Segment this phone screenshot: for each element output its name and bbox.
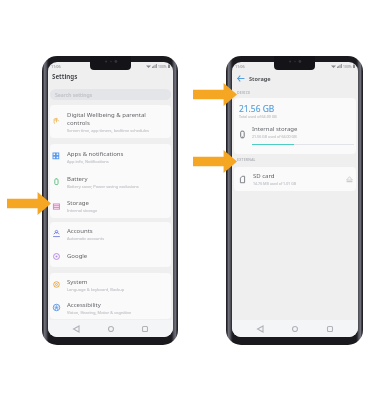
staticText: Search settings bbox=[55, 91, 93, 98]
button[interactable]: Apps & notifications bbox=[50, 144, 171, 169]
button[interactable]: SD card bbox=[234, 167, 356, 191]
staticText: Battery bbox=[67, 175, 88, 183]
button[interactable]: Battery bbox=[50, 169, 171, 194]
staticText: 11:06 bbox=[235, 64, 245, 69]
other: Storage step bbox=[7, 192, 51, 215]
staticText: Digital Wellbeing & parental bbox=[67, 111, 146, 119]
staticText: System bbox=[67, 278, 88, 286]
button[interactable]: Accessibility bbox=[50, 296, 171, 319]
button[interactable]: Back bbox=[235, 73, 246, 84]
staticText: Settings bbox=[52, 72, 78, 80]
staticText: controls bbox=[67, 119, 90, 127]
staticText: 14.76 MB used of 1.01 GB bbox=[253, 181, 297, 186]
staticText: SD card bbox=[253, 172, 275, 180]
staticText: Storage bbox=[67, 199, 89, 207]
button[interactable]: Recents bbox=[323, 322, 337, 336]
staticText: 21.56 GB bbox=[239, 103, 275, 114]
staticText: Accounts bbox=[67, 227, 93, 235]
staticText: App info, Notifications bbox=[67, 159, 109, 164]
button[interactable]: System bbox=[50, 273, 171, 296]
staticText: Screen time, app timers, bedtime schedul… bbox=[67, 128, 150, 133]
staticText: Internal storage bbox=[67, 208, 98, 213]
staticText: 11:06 bbox=[51, 64, 61, 69]
button[interactable]: Eject SD card bbox=[344, 174, 354, 184]
staticText: Google bbox=[67, 252, 88, 260]
staticText: Apps & notifications bbox=[67, 150, 124, 158]
staticText: Total used of 64.00 GB bbox=[239, 114, 277, 119]
staticText: Accessibility bbox=[67, 301, 101, 309]
button[interactable]: Accounts bbox=[50, 222, 171, 245]
button[interactable]: Storage bbox=[50, 194, 171, 218]
button[interactable]: Search settings bbox=[50, 89, 171, 100]
button[interactable]: Back bbox=[253, 322, 267, 336]
staticText: Automatic accounts bbox=[67, 236, 105, 241]
staticText: Battery saver, Power saving exclusions bbox=[67, 184, 139, 189]
button[interactable]: Recents bbox=[138, 322, 152, 336]
other: Device section bbox=[193, 83, 237, 106]
staticText: 100% bbox=[158, 64, 167, 69]
button[interactable]: Back bbox=[69, 322, 83, 336]
staticText: Language & keyboard, Backup bbox=[67, 287, 125, 292]
staticText: Storage bbox=[249, 75, 271, 83]
staticText: DEVICE bbox=[237, 90, 251, 95]
staticText: Vision, Hearing, Motor & cognitive bbox=[67, 310, 132, 315]
button[interactable]: Home bbox=[104, 322, 118, 336]
other: External section bbox=[193, 150, 237, 173]
button[interactable]: Digital Wellbeing & parental bbox=[50, 105, 171, 138]
button[interactable]: Internal storage bbox=[234, 124, 356, 152]
staticText: 21.56 GB used of 64.00 GB bbox=[252, 134, 297, 139]
staticText: 100% bbox=[343, 64, 352, 69]
staticText: EXTERNAL bbox=[237, 157, 256, 162]
button[interactable]: Home bbox=[288, 322, 302, 336]
button[interactable]: Google bbox=[50, 245, 171, 267]
staticText: Internal storage bbox=[252, 125, 298, 133]
